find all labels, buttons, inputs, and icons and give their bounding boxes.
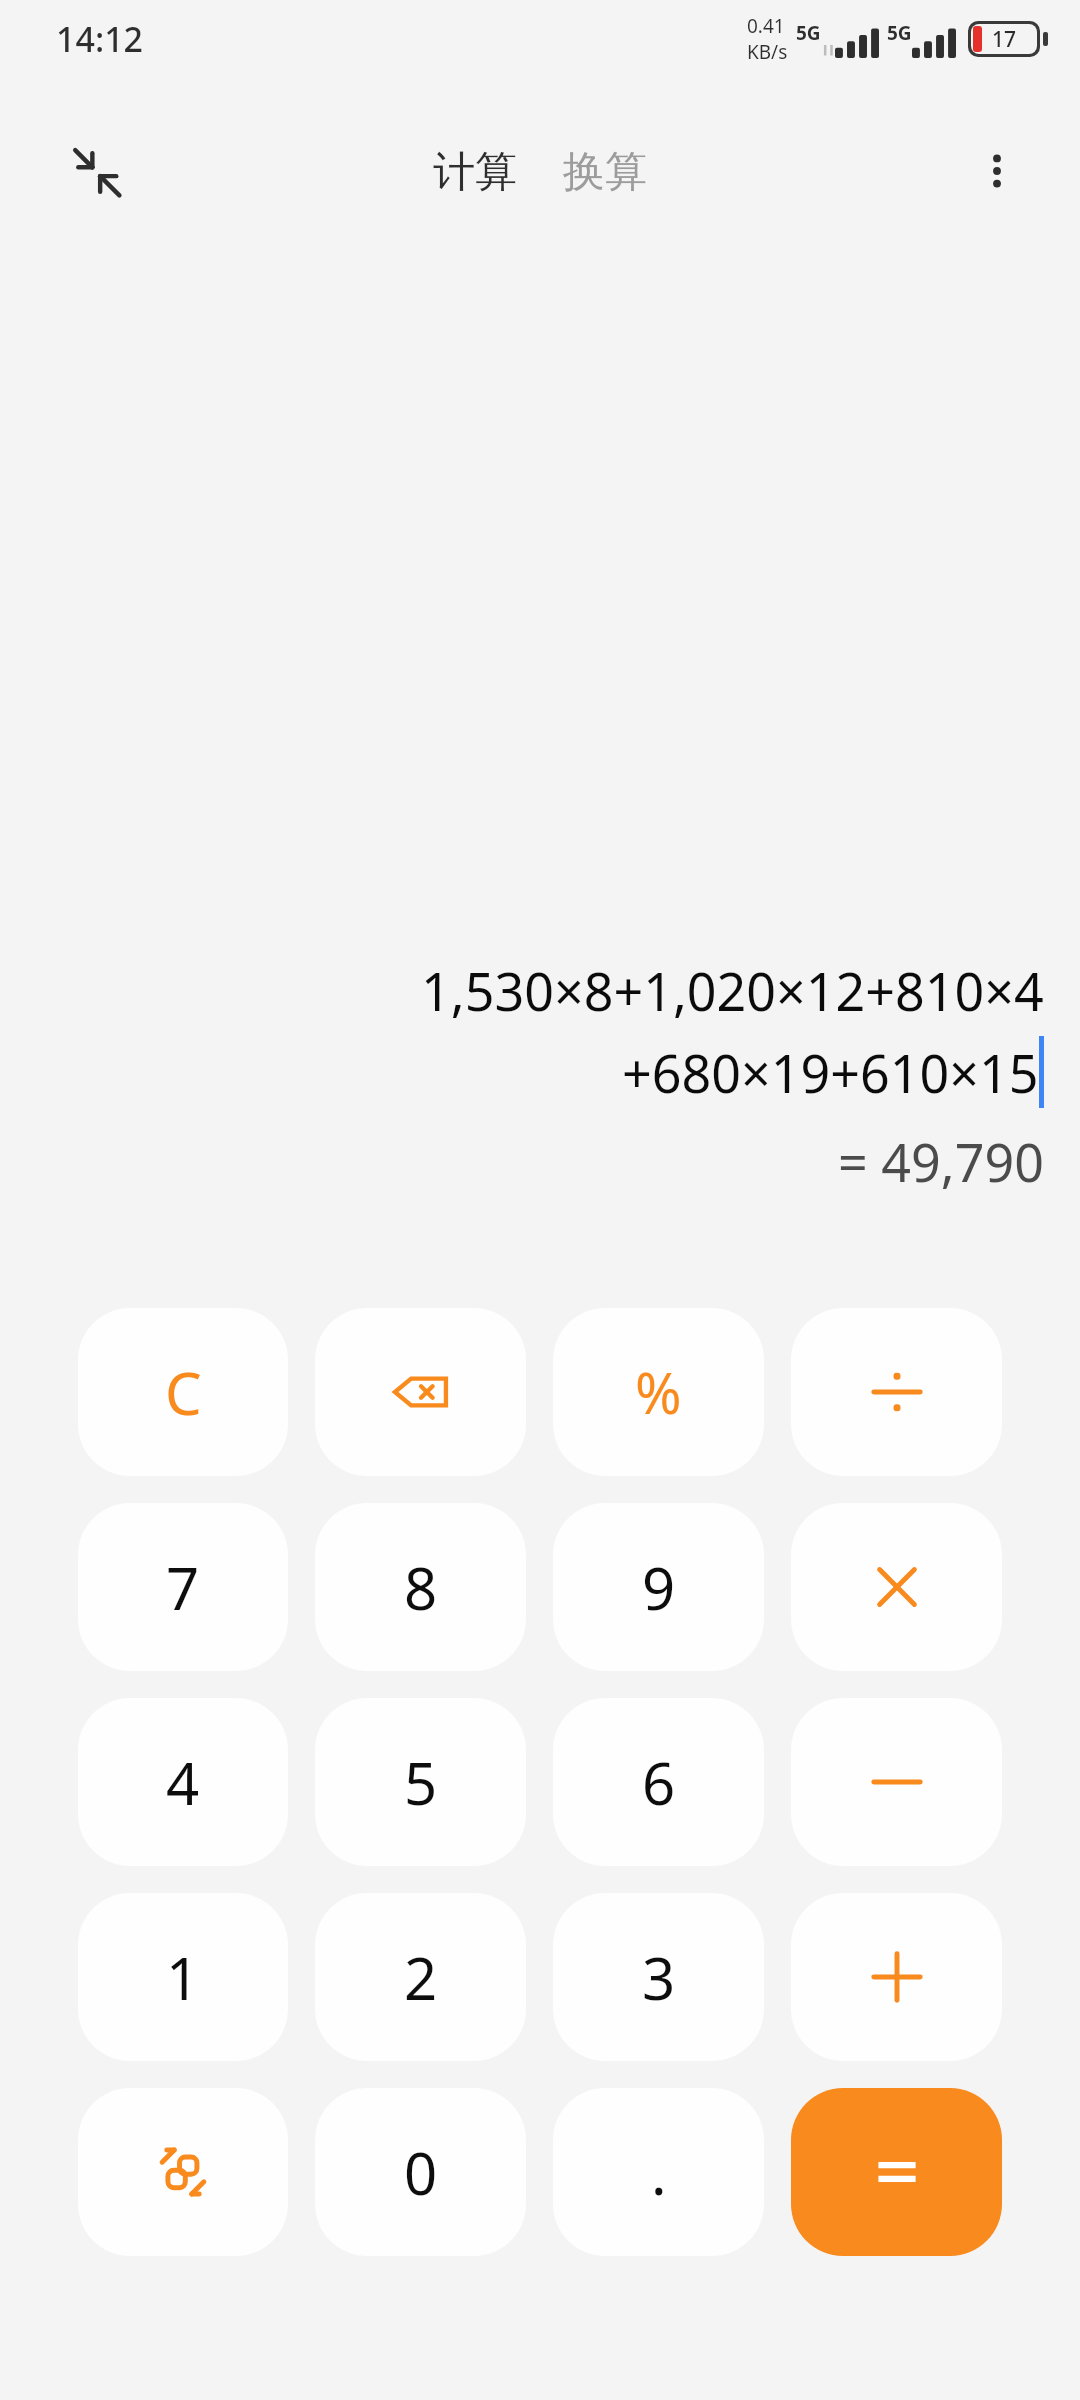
staticText: 3 <box>642 1938 676 2017</box>
staticText: C <box>165 1353 202 1432</box>
staticText: 1,530×8+1,020×12+810×4 <box>421 955 1044 1026</box>
button[interactable]: Multiply <box>791 1503 1002 1671</box>
button[interactable]: Collapse <box>58 134 134 210</box>
staticText: . <box>651 2133 667 2212</box>
button[interactable]: 9 <box>553 1503 764 1671</box>
staticText: 计算 <box>433 146 517 199</box>
button[interactable]: 换算 <box>551 138 659 207</box>
button[interactable]: 2 <box>315 1893 526 2061</box>
button[interactable]: Unit converter <box>78 2088 288 2256</box>
button[interactable]: 3 <box>553 1893 764 2061</box>
staticText: 0.41 <box>747 13 785 39</box>
staticText: % <box>635 1354 682 1430</box>
staticText: 8 <box>404 1548 438 1627</box>
staticText: = 49,790 <box>838 1126 1044 1197</box>
staticText: 换算 <box>563 146 647 199</box>
staticText: 4 <box>166 1743 200 1822</box>
staticText: 9 <box>642 1548 676 1627</box>
staticText: 0 <box>404 2133 438 2212</box>
staticText: +680×19+610×15 <box>622 1037 1039 1108</box>
button[interactable]: 1 <box>78 1893 288 2061</box>
staticText: 6 <box>642 1743 676 1822</box>
button[interactable]: Minus <box>791 1698 1002 1866</box>
staticText: 5 <box>404 1743 438 1822</box>
button[interactable]: . <box>553 2088 764 2256</box>
staticText: 5G <box>887 20 912 46</box>
button[interactable]: 4 <box>78 1698 288 1866</box>
button[interactable]: Backspace <box>315 1308 526 1476</box>
button[interactable]: Divide <box>791 1308 1002 1476</box>
staticText: 1 <box>166 1938 200 2017</box>
staticText: 14:12 <box>56 16 144 62</box>
staticText: KB/s <box>747 39 788 65</box>
staticText: 2 <box>404 1938 438 2017</box>
button[interactable]: Plus <box>791 1893 1002 2061</box>
staticText: 7 <box>166 1548 200 1627</box>
staticText: 5G <box>796 20 821 46</box>
button[interactable]: More options <box>958 132 1036 210</box>
button[interactable]: 8 <box>315 1503 526 1671</box>
button[interactable]: 7 <box>78 1503 288 1671</box>
button[interactable]: 6 <box>553 1698 764 1866</box>
button[interactable]: 计算 <box>421 138 529 207</box>
button[interactable]: 5 <box>315 1698 526 1866</box>
staticText: 17 <box>992 25 1017 54</box>
button[interactable]: 0 <box>315 2088 526 2256</box>
button[interactable]: Equals <box>791 2088 1002 2256</box>
button[interactable]: % <box>553 1308 764 1476</box>
button[interactable]: C <box>78 1308 288 1476</box>
